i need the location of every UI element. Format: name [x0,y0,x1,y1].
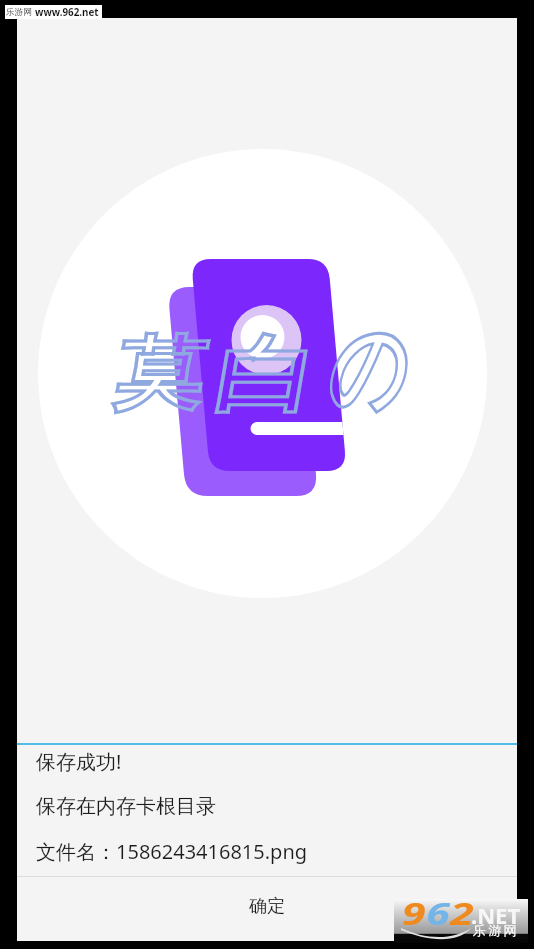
button[interactable]: 确定 [17,877,517,939]
staticText: .NET [471,900,521,930]
staticText: 保存成功! [36,748,122,775]
staticText: 乐游网 [6,7,32,18]
staticText: 文件名：1586243416815.png [36,838,308,865]
staticText: 保存在内存卡根目录 [36,794,216,819]
staticText: 乐游网 [473,922,519,938]
staticText: 确定 [249,895,285,918]
staticText: www.962.net [35,6,99,19]
